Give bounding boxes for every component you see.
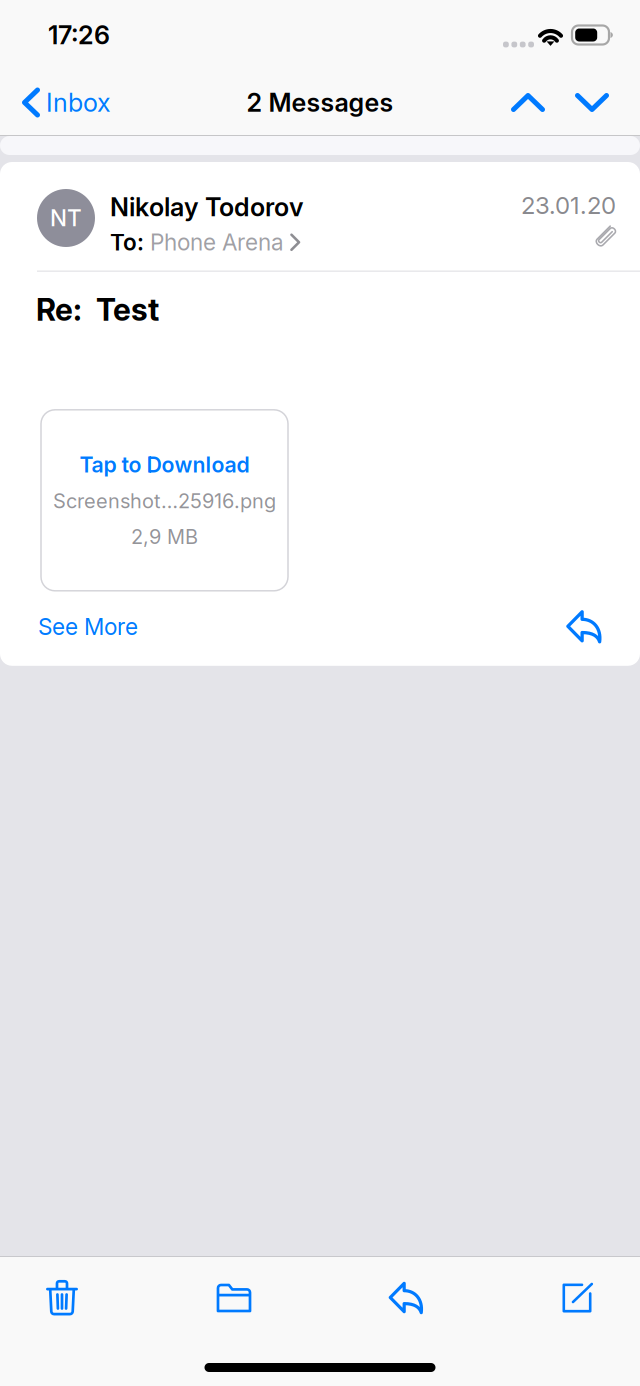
button[interactable]: Next message [560,71,624,133]
staticText: See More [38,613,138,640]
button[interactable]: Tap to Download [41,410,288,591]
staticText: Screenshot…25916.png [53,489,276,513]
staticText: Re: Test [36,292,159,328]
button[interactable]: Delete [17,1261,107,1335]
button[interactable]: Move to folder [189,1261,279,1335]
staticText: Nikolay Todorov [110,192,304,222]
staticText: Inbox [46,88,111,117]
staticText: 2 Messages [246,88,393,117]
staticText: Phone Arena [150,229,284,256]
button[interactable]: Reply [361,1261,451,1335]
staticText: 17:26 [48,20,110,50]
button[interactable]: Compose [533,1261,623,1335]
button[interactable]: Inbox [0,71,123,133]
button[interactable]: See More [38,610,138,644]
staticText: 23.01.20 [521,191,616,219]
staticText: NT [50,205,82,231]
button[interactable]: Reply [562,607,606,647]
staticText: To: [110,229,144,256]
staticText: Tap to Download [79,452,249,477]
staticText: 2,9 MB [131,525,198,548]
button[interactable]: Previous message [496,71,560,133]
